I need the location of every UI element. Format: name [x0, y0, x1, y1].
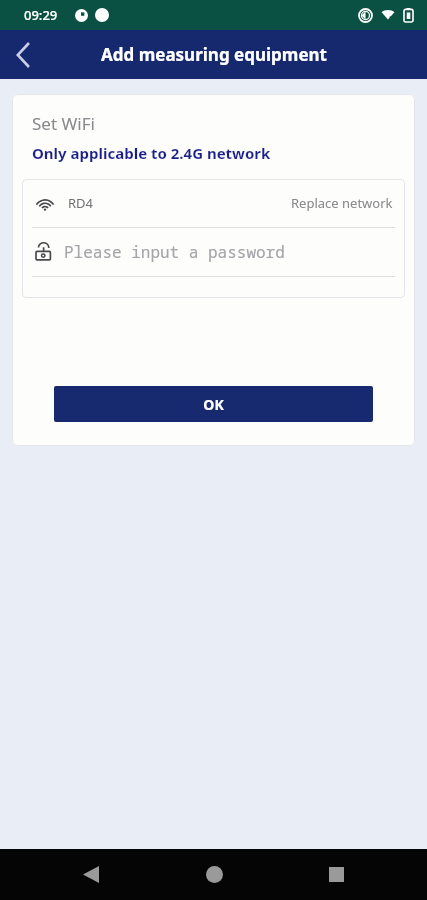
staticText: Replace network: [291, 194, 393, 212]
button[interactable]: RD4: [22, 179, 405, 227]
staticText: RD4: [68, 194, 94, 212]
button[interactable]: Back: [59, 849, 123, 900]
staticText: OK: [203, 395, 224, 414]
button[interactable]: Recent apps: [304, 849, 368, 900]
button[interactable]: Home: [182, 849, 246, 900]
button[interactable]: OK: [54, 386, 373, 422]
staticText: Add measuring equipment: [101, 43, 327, 66]
button[interactable]: Please input a password: [22, 228, 405, 276]
staticText: Please input a password: [64, 241, 285, 263]
button[interactable]: Back: [0, 30, 46, 79]
staticText: Only applicable to 2.4G network: [32, 143, 271, 163]
staticText: Set WiFi: [32, 112, 95, 135]
staticText: 09:29: [24, 6, 58, 24]
